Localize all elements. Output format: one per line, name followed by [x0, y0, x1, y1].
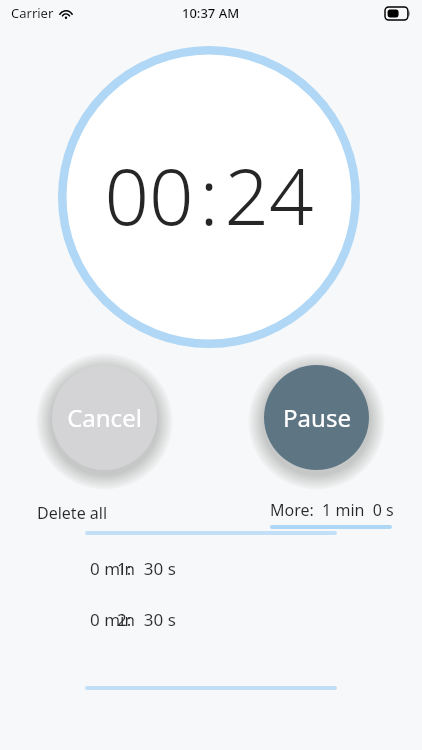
- button[interactable]: More: 1 min 0 s: [262, 496, 402, 532]
- button[interactable]: Cancel: [52, 365, 157, 470]
- staticText: Cancel: [67, 401, 142, 434]
- staticText: 0 min 30 s: [90, 557, 176, 580]
- staticText: Delete all: [37, 502, 108, 524]
- staticText: Pause: [283, 401, 351, 434]
- button[interactable]: 00: [58, 46, 360, 348]
- button[interactable]: Pause: [264, 365, 369, 470]
- button[interactable]: 2:: [0, 606, 422, 632]
- staticText: 2:: [117, 608, 132, 631]
- staticText: More: 1 min 0 s: [270, 499, 394, 521]
- button[interactable]: 1:: [0, 555, 422, 581]
- staticText: :: [199, 142, 219, 248]
- staticText: 24: [224, 142, 314, 248]
- staticText: 10:37 AM: [182, 4, 240, 22]
- staticText: 1:: [117, 557, 132, 580]
- staticText: 0 min 30 s: [90, 608, 176, 631]
- staticText: Carrier: [11, 4, 54, 22]
- button[interactable]: Delete all: [30, 498, 115, 528]
- staticText: 00: [104, 142, 194, 248]
